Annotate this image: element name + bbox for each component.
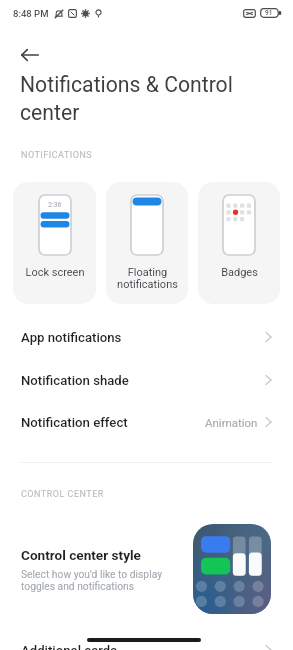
staticText: App notifications bbox=[21, 330, 122, 345]
staticText: NOTIFICATIONS bbox=[21, 150, 93, 161]
staticText: Control center style bbox=[21, 547, 141, 563]
button[interactable]: Badges bbox=[198, 182, 280, 304]
staticText: Notifications & Control center bbox=[20, 72, 272, 125]
staticText: CONTROL CENTER bbox=[21, 489, 104, 500]
button[interactable]: App notifications bbox=[0, 325, 293, 349]
staticText: Select how you'd like to display toggles… bbox=[21, 568, 163, 592]
button[interactable]: Notification effect bbox=[0, 410, 293, 434]
button[interactable]: Floating notifications bbox=[106, 182, 188, 304]
button[interactable]: Notification shade bbox=[0, 368, 293, 392]
staticText: 8:48 PM bbox=[13, 8, 49, 19]
staticText: Notification effect bbox=[21, 415, 128, 430]
button[interactable]: Additional cards bbox=[0, 638, 293, 650]
staticText: Animation bbox=[205, 416, 258, 429]
button[interactable]: Back bbox=[11, 36, 49, 74]
staticText: 2:36 bbox=[48, 201, 62, 209]
staticText: Lock screen bbox=[25, 266, 85, 279]
staticText: Badges bbox=[221, 266, 258, 279]
staticText: Floating notifications bbox=[117, 266, 178, 291]
staticText: 91 bbox=[265, 9, 273, 17]
staticText: Additional cards bbox=[21, 643, 118, 650]
staticText: Notification shade bbox=[21, 373, 129, 388]
button[interactable]: 2:36 bbox=[13, 182, 96, 304]
button[interactable]: Control center style bbox=[0, 516, 293, 622]
